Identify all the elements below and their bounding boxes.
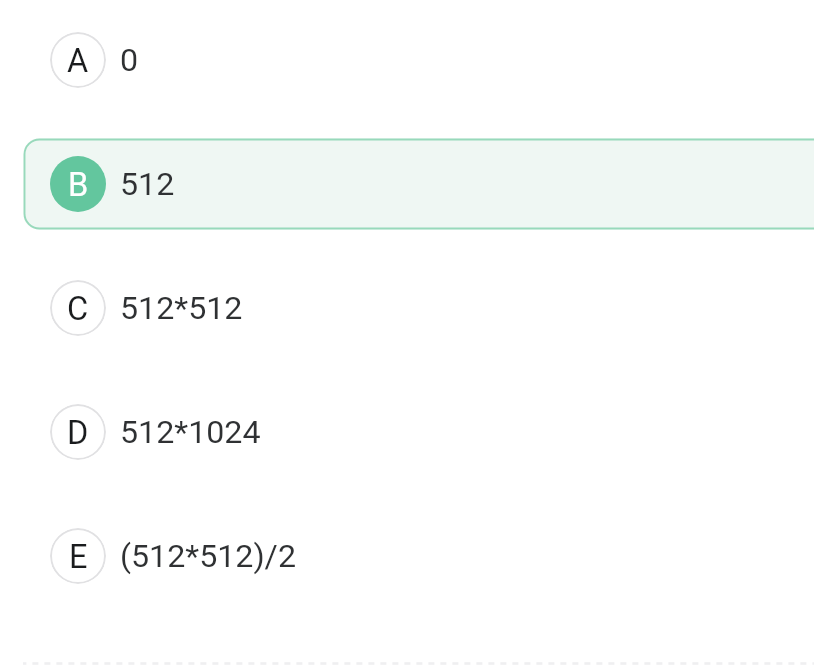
staticText: 0 [120, 41, 139, 79]
staticText: B [68, 166, 89, 204]
button[interactable]: A [0, 0, 814, 122]
staticText: D [67, 414, 89, 452]
staticText: E [69, 538, 88, 576]
staticText: 512 [120, 165, 175, 203]
button[interactable]: E [0, 494, 814, 618]
staticText: (512*512)/2 [120, 537, 296, 575]
staticText: 512*1024 [120, 413, 261, 451]
staticText: 512*512 [120, 289, 243, 327]
button[interactable]: D [0, 370, 814, 494]
staticText: C [67, 290, 89, 328]
button[interactable]: B [0, 122, 814, 246]
button[interactable]: C [0, 246, 814, 370]
staticText: A [67, 42, 89, 80]
